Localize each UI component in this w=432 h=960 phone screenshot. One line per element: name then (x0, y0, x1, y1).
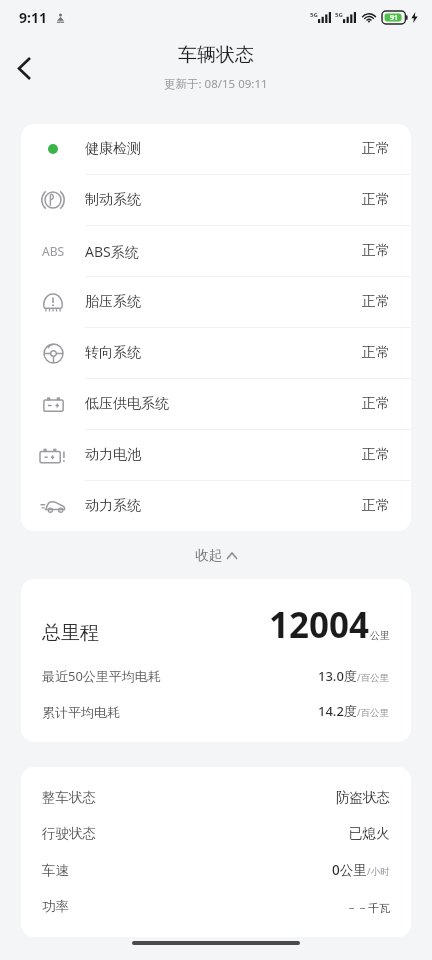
staticText: /小时 (367, 865, 390, 878)
button[interactable]: 转向系统 (21, 328, 411, 378)
staticText: 整车状态 (42, 789, 96, 806)
staticText: 更新于: 08/15 09:11 (164, 76, 268, 92)
staticText: 制动系统 (85, 191, 141, 209)
staticText: /百公里 (357, 671, 390, 684)
staticText: 正常 (362, 344, 390, 362)
staticText: 正常 (362, 140, 390, 158)
staticText: 低压供电系统 (85, 395, 169, 413)
staticText: 12004 (269, 601, 370, 649)
staticText: 正常 (362, 446, 390, 464)
staticText: 累计平均电耗 (42, 704, 120, 720)
staticText: 正常 (362, 395, 390, 413)
staticText: 14.2度 (318, 702, 357, 720)
staticText: 动力电池 (85, 446, 141, 464)
staticText: 0公里 (332, 861, 367, 879)
staticText: 行驶状态 (42, 825, 96, 842)
staticText: 车速 (42, 862, 69, 879)
staticText: 91 (390, 13, 399, 23)
staticText: 转向系统 (85, 344, 141, 362)
staticText: －－千瓦 (346, 901, 390, 915)
staticText: 公里 (370, 629, 390, 642)
staticText: 5G (310, 11, 318, 19)
staticText: 正常 (362, 497, 390, 515)
button[interactable]: 返回 (0, 44, 48, 92)
staticText: 正常 (362, 242, 390, 260)
staticText: /百公里 (357, 706, 390, 719)
button[interactable]: 制动系统 (21, 175, 411, 225)
staticText: 9:11 (19, 8, 47, 27)
staticText: 最近50公里平均电耗 (42, 667, 161, 685)
staticText: 胎压系统 (85, 293, 141, 311)
staticText: 防盗状态 (336, 789, 390, 806)
button[interactable]: 低压供电系统 (21, 379, 411, 429)
staticText: 动力系统 (85, 497, 141, 515)
staticText: 总里程 (42, 621, 99, 645)
button[interactable]: 胎压系统 (21, 277, 411, 327)
staticText: ABS系统 (85, 242, 139, 261)
button[interactable]: ABS (21, 226, 411, 276)
button[interactable]: 动力系统 (21, 481, 411, 531)
button[interactable]: 动力电池 (21, 430, 411, 480)
button[interactable]: 收起 (0, 531, 432, 579)
staticText: 收起 (195, 547, 222, 564)
staticText: 正常 (362, 293, 390, 311)
staticText: 车辆状态 (178, 43, 254, 67)
staticText: 已熄火 (349, 825, 390, 842)
staticText: ABS (42, 243, 65, 259)
staticText: 健康检测 (85, 140, 141, 158)
staticText: 正常 (362, 191, 390, 209)
staticText: 13.0度 (318, 667, 357, 685)
button[interactable]: 健康检测 (21, 124, 411, 174)
staticText: 功率 (42, 898, 69, 915)
staticText: 5G (335, 11, 343, 19)
